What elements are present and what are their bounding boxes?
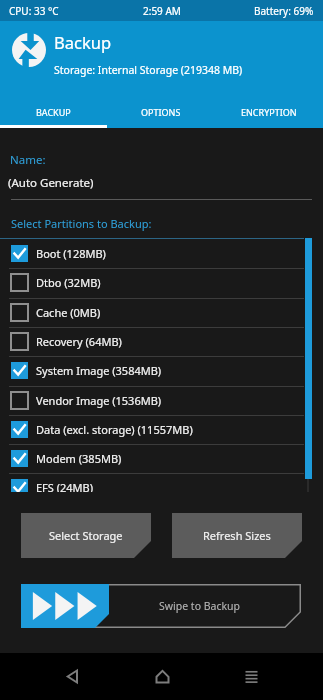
staticText: Refresh Sizes bbox=[203, 528, 271, 543]
button[interactable]: Modem (385MB) bbox=[0, 444, 323, 473]
staticText: Name: bbox=[10, 152, 46, 168]
staticText: Boot (128MB) bbox=[36, 246, 106, 261]
button[interactable]: EFS (24MB) bbox=[0, 473, 323, 492]
staticText: Select Partitions to Backup: bbox=[11, 216, 152, 231]
button[interactable]: Dtbo (32MB) bbox=[0, 268, 323, 297]
button[interactable]: Select Storage bbox=[21, 513, 151, 558]
button[interactable]: Recent apps bbox=[229, 653, 273, 700]
button[interactable]: BACKUP bbox=[0, 95, 107, 128]
staticText: 2:59 AM bbox=[143, 4, 181, 18]
button[interactable]: ENCRYPTION bbox=[215, 95, 323, 128]
staticText: ENCRYPTION bbox=[241, 106, 297, 118]
staticText: Storage: Internal Storage (219348 MB) bbox=[54, 63, 243, 77]
staticText: Battery: 69% bbox=[254, 4, 314, 18]
button[interactable]: Back bbox=[50, 653, 94, 700]
staticText: Recovery (64MB) bbox=[36, 334, 122, 349]
staticText: Backup bbox=[54, 31, 112, 53]
staticText: CPU: 33 °C bbox=[9, 4, 59, 18]
staticText: System Image (3584MB) bbox=[36, 363, 162, 378]
staticText: (Auto Generate) bbox=[8, 175, 94, 191]
staticText: Select Storage bbox=[49, 528, 123, 543]
button[interactable]: System Image (3584MB) bbox=[0, 356, 323, 385]
button[interactable]: Swipe to Backup bbox=[21, 584, 301, 628]
staticText: EFS (24MB) bbox=[36, 480, 94, 492]
staticText: BACKUP bbox=[36, 106, 71, 118]
button[interactable]: Recovery (64MB) bbox=[0, 327, 323, 356]
button[interactable]: Vendor Image (1536MB) bbox=[0, 386, 323, 415]
staticText: Vendor Image (1536MB) bbox=[36, 393, 162, 408]
staticText: Cache (0MB) bbox=[36, 305, 101, 320]
staticText: Dtbo (32MB) bbox=[36, 275, 101, 290]
staticText: Swipe to Backup bbox=[159, 599, 241, 613]
staticText: Data (excl. storage) (11557MB) bbox=[36, 422, 193, 437]
button[interactable]: Refresh Sizes bbox=[172, 513, 302, 558]
button[interactable]: Data (excl. storage) (11557MB) bbox=[0, 415, 323, 444]
button[interactable]: OPTIONS bbox=[107, 95, 215, 128]
button[interactable]: Cache (0MB) bbox=[0, 298, 323, 327]
staticText: OPTIONS bbox=[141, 106, 181, 118]
button[interactable]: Home bbox=[140, 653, 184, 700]
button[interactable]: Boot (128MB) bbox=[0, 239, 323, 268]
staticText: Modem (385MB) bbox=[36, 451, 122, 466]
